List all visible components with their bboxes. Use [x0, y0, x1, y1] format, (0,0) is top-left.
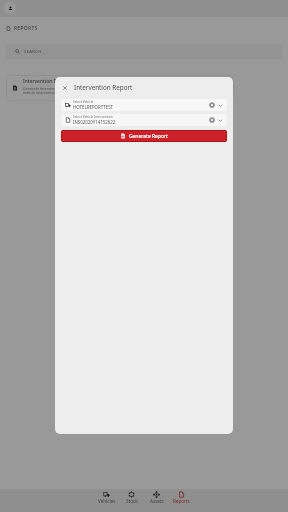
staticText: HOTELREPORTTEST — [73, 104, 113, 110]
staticText: REPORTS — [14, 25, 38, 32]
button[interactable]: Select Vehicle Intervention — [61, 114, 227, 126]
staticText: SEARCH — [24, 49, 42, 55]
button[interactable]: Expand — [216, 116, 224, 124]
staticText: Vehicles — [98, 498, 116, 504]
button[interactable]: Generate Report — [62, 131, 226, 141]
staticText: Select Vehicle Intervention — [73, 115, 113, 119]
button[interactable]: Stock — [119, 489, 144, 504]
button[interactable]: Reports — [169, 489, 194, 504]
button[interactable]: Vehicles — [94, 489, 119, 504]
staticText: Intervention Report — [23, 78, 70, 85]
staticText: Generate intervention reports for vehicl… — [23, 86, 81, 95]
button[interactable]: Intervention Report — [6, 75, 234, 101]
staticText: Reports — [173, 498, 190, 504]
button[interactable]: SEARCH — [6, 44, 282, 59]
button[interactable]: Close — [60, 83, 69, 92]
button[interactable]: Expand — [216, 101, 224, 109]
staticText: Generate Report — [129, 133, 168, 140]
staticText: Stock — [126, 498, 138, 504]
button[interactable]: Clear — [208, 101, 216, 109]
button[interactable]: Clear — [208, 116, 216, 124]
button[interactable]: Assets — [144, 489, 169, 504]
button[interactable]: Select Vehicle — [61, 99, 227, 111]
staticText: Assets — [150, 498, 164, 504]
staticText: Select Vehicle — [73, 100, 94, 104]
staticText: Intervention Report — [74, 83, 133, 92]
staticText: INS02020Y14152622 — [73, 119, 116, 125]
button[interactable]: Account — [4, 2, 16, 14]
